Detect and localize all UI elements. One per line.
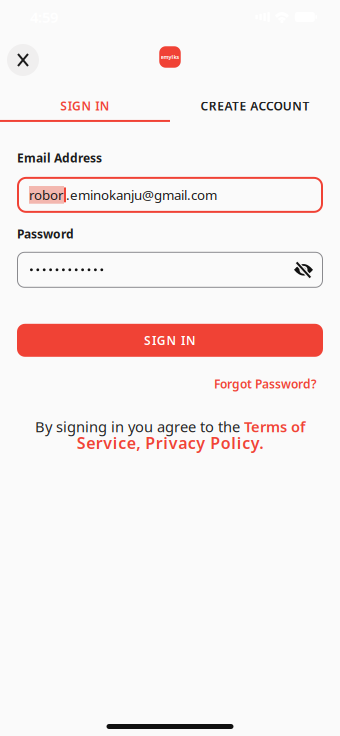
staticText: Terms of	[244, 417, 305, 436]
button[interactable]: Forgot Password?	[214, 376, 317, 392]
button[interactable]: SIGN IN	[0, 98, 170, 122]
button[interactable]: Close	[7, 44, 39, 76]
staticText: Forgot Password?	[214, 376, 317, 392]
button[interactable]: SIGN IN	[17, 324, 323, 357]
staticText: robor	[29, 186, 64, 204]
staticText: .eminokanju@gmail.com	[66, 186, 217, 204]
staticText: Service, Privacy Policy.	[77, 432, 263, 453]
button[interactable]: Email Address	[17, 177, 323, 213]
staticText: SIGN IN	[144, 332, 196, 348]
button[interactable]: Password	[17, 252, 323, 288]
staticText: Email Address	[17, 150, 102, 166]
staticText: CREATE ACCOUNT	[200, 98, 310, 114]
staticText: Password	[17, 226, 74, 242]
staticText: By signing in you agree to the	[35, 417, 244, 436]
button[interactable]: Show password	[294, 264, 313, 275]
staticText: emylks	[160, 53, 179, 61]
button[interactable]: CREATE ACCOUNT	[170, 98, 340, 122]
staticText: SIGN IN	[60, 98, 110, 114]
